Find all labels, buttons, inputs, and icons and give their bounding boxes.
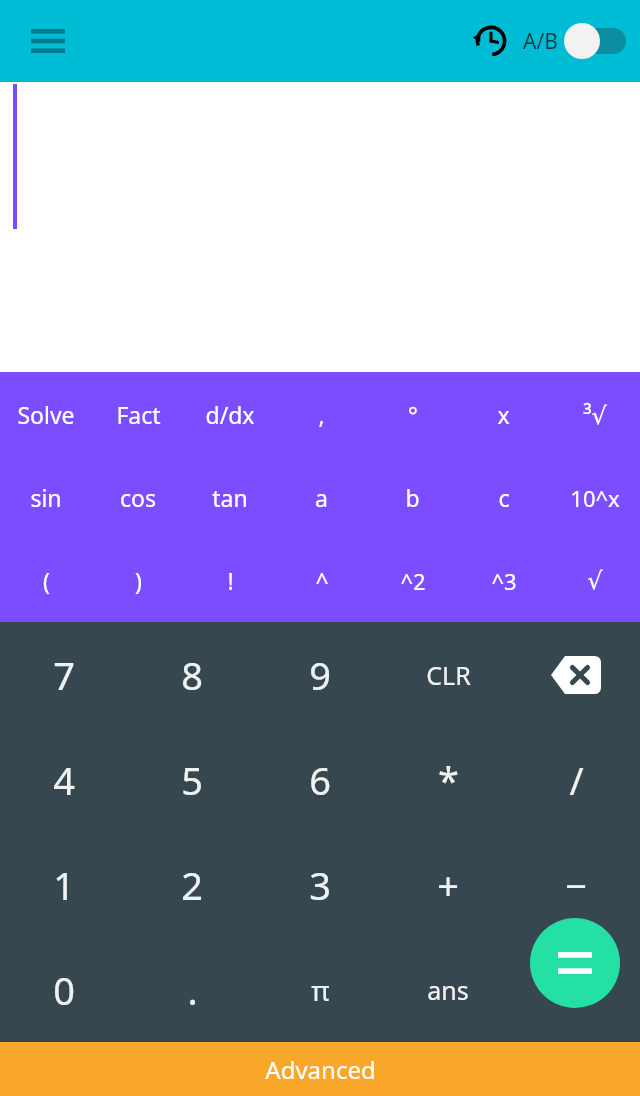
- staticText: 8: [181, 649, 203, 701]
- staticText: Advanced: [265, 1053, 376, 1086]
- button[interactable]: √: [549, 539, 640, 622]
- button[interactable]: 10^x: [549, 456, 640, 539]
- button[interactable]: tan: [184, 456, 276, 539]
- staticText: ³√: [583, 398, 607, 431]
- staticText: ^3: [491, 566, 517, 596]
- staticText: √: [587, 567, 603, 595]
- button[interactable]: 7: [0, 622, 128, 727]
- button[interactable]: b: [367, 456, 458, 539]
- button[interactable]: ^: [276, 539, 367, 622]
- staticText: −: [565, 859, 587, 911]
- button[interactable]: Equals: [530, 918, 620, 1008]
- staticText: ,: [318, 399, 325, 430]
- button[interactable]: *: [384, 727, 512, 832]
- button[interactable]: Advanced: [0, 1042, 640, 1096]
- staticText: °: [408, 399, 418, 430]
- button[interactable]: 3: [256, 832, 384, 937]
- button[interactable]: (: [0, 539, 92, 622]
- button[interactable]: 0: [0, 937, 128, 1042]
- button[interactable]: x: [458, 372, 549, 456]
- button[interactable]: [564, 21, 626, 61]
- button[interactable]: cos: [92, 456, 184, 539]
- staticText: Fact: [116, 399, 161, 430]
- button[interactable]: ³√: [549, 372, 640, 456]
- button[interactable]: .: [128, 937, 256, 1042]
- staticText: a: [315, 482, 328, 513]
- staticText: ^: [315, 565, 329, 596]
- staticText: (: [43, 565, 50, 596]
- button[interactable]: 4: [0, 727, 128, 832]
- button[interactable]: [0, 82, 640, 372]
- staticText: 0: [53, 964, 75, 1016]
- staticText: ): [135, 565, 142, 596]
- button[interactable]: ans: [384, 937, 512, 1042]
- staticText: 4: [53, 754, 75, 806]
- staticText: .: [187, 964, 198, 1016]
- staticText: cos: [120, 482, 156, 513]
- button[interactable]: 5: [128, 727, 256, 832]
- staticText: *: [438, 754, 459, 806]
- button[interactable]: 1: [0, 832, 128, 937]
- button[interactable]: a: [276, 456, 367, 539]
- button[interactable]: 2: [128, 832, 256, 937]
- button[interactable]: ^3: [458, 539, 549, 622]
- button[interactable]: sin: [0, 456, 92, 539]
- button[interactable]: Backspace: [512, 622, 640, 727]
- staticText: A/B: [523, 27, 558, 56]
- staticText: Solve: [17, 399, 75, 430]
- staticText: 1: [53, 859, 75, 911]
- button[interactable]: ): [92, 539, 184, 622]
- button[interactable]: Fact: [92, 372, 184, 456]
- button[interactable]: 9: [256, 622, 384, 727]
- staticText: 9: [309, 649, 331, 701]
- staticText: d/dx: [205, 399, 255, 430]
- button[interactable]: 8: [128, 622, 256, 727]
- staticText: +: [437, 859, 459, 911]
- button[interactable]: d/dx: [184, 372, 276, 456]
- button[interactable]: /: [512, 727, 640, 832]
- button[interactable]: c: [458, 456, 549, 539]
- button[interactable]: −: [512, 832, 640, 937]
- staticText: CLR: [426, 658, 471, 692]
- button[interactable]: °: [367, 372, 458, 456]
- staticText: 5: [181, 754, 203, 806]
- staticText: tan: [212, 482, 248, 513]
- staticText: 3: [309, 859, 331, 911]
- staticText: 10^x: [570, 483, 620, 513]
- staticText: ans: [427, 973, 469, 1007]
- staticText: 6: [309, 754, 331, 806]
- button[interactable]: ^2: [367, 539, 458, 622]
- button[interactable]: !: [184, 539, 276, 622]
- staticText: x: [497, 399, 510, 430]
- button[interactable]: +: [384, 832, 512, 937]
- staticText: sin: [30, 482, 62, 513]
- button[interactable]: Solve: [0, 372, 92, 456]
- staticText: b: [405, 482, 420, 513]
- button[interactable]: CLR: [384, 622, 512, 727]
- staticText: c: [498, 482, 510, 513]
- button[interactable]: History: [463, 13, 519, 69]
- button[interactable]: Menu: [14, 7, 82, 75]
- staticText: /: [569, 754, 584, 806]
- button[interactable]: ,: [276, 372, 367, 456]
- button[interactable]: 6: [256, 727, 384, 832]
- staticText: 7: [53, 649, 75, 701]
- staticText: π: [311, 971, 330, 1009]
- staticText: ^2: [400, 566, 426, 596]
- button[interactable]: π: [256, 937, 384, 1042]
- staticText: !: [227, 565, 234, 596]
- staticText: 2: [181, 859, 203, 911]
